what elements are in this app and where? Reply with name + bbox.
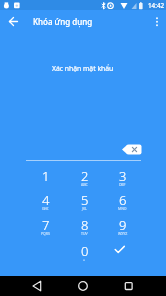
staticText: 1: [42, 167, 50, 185]
button[interactable]: 5: [65, 187, 104, 212]
staticText: JKL: [82, 206, 87, 211]
staticText: 2: [81, 167, 89, 185]
button[interactable]: 3: [103, 163, 142, 188]
button[interactable]: 6: [103, 187, 142, 212]
staticText: 0: [81, 242, 89, 260]
staticText: 5: [81, 191, 89, 209]
button[interactable]: [5, 13, 22, 30]
button[interactable]: [118, 276, 140, 296]
staticText: WXYZ: [118, 231, 128, 236]
button[interactable]: 9: [103, 212, 142, 237]
button[interactable]: [150, 13, 164, 30]
button[interactable]: 7: [26, 212, 65, 237]
staticText: DEF: [119, 182, 126, 187]
button[interactable]: 2: [65, 163, 104, 188]
staticText: +: [83, 257, 86, 262]
button[interactable]: 1: [26, 163, 65, 188]
button[interactable]: [72, 276, 94, 296]
button[interactable]: 8: [65, 212, 104, 237]
staticText: 4: [42, 191, 50, 209]
staticText: Xác nhận mật khẩu: [52, 64, 114, 73]
button[interactable]: [103, 238, 142, 263]
button[interactable]: [26, 276, 48, 296]
staticText: Khóa ứng dụng: [33, 16, 93, 27]
staticText: PQRS: [41, 231, 50, 236]
staticText: 8: [81, 216, 89, 234]
button[interactable]: 4: [26, 187, 65, 212]
staticText: 6: [119, 191, 127, 209]
staticText: GHI: [42, 206, 49, 211]
staticText: 9: [119, 216, 127, 234]
staticText: MNO: [118, 206, 127, 211]
staticText: 3: [119, 167, 127, 185]
button[interactable]: 0: [65, 238, 104, 263]
staticText: 7: [42, 216, 50, 234]
button[interactable]: [118, 141, 146, 158]
staticText: ABC: [81, 182, 88, 187]
staticText: TUV: [81, 231, 88, 236]
staticText: 14:42: [148, 1, 165, 10]
